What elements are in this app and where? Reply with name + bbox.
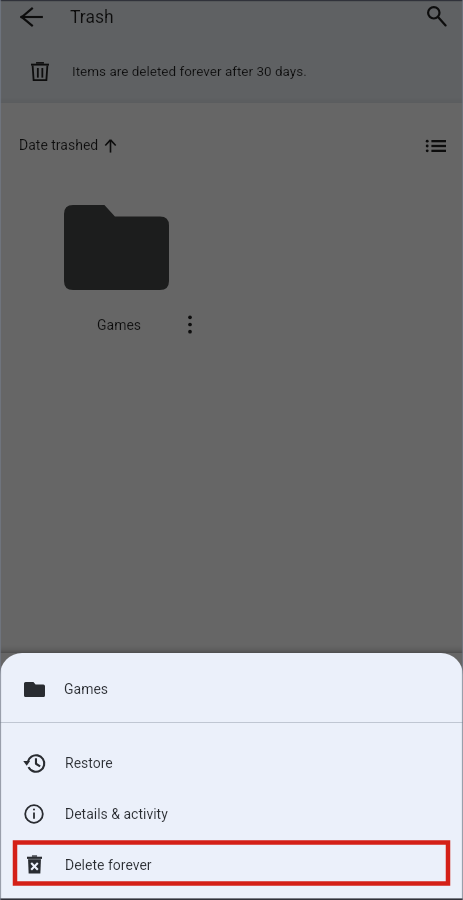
staticText: Games xyxy=(64,681,109,697)
button[interactable]: More options xyxy=(173,307,207,341)
button[interactable]: Date trashed xyxy=(11,132,125,158)
button[interactable]: Games xyxy=(0,667,463,711)
button[interactable] xyxy=(8,192,224,344)
button[interactable]: Details & activity xyxy=(0,789,463,839)
staticText: Restore xyxy=(65,755,113,771)
button[interactable]: Search xyxy=(419,0,455,33)
staticText: Items are deleted forever after 30 days. xyxy=(72,63,307,79)
staticText: Details & activity xyxy=(65,806,168,822)
staticText: Trash xyxy=(70,7,114,28)
button[interactable]: Restore xyxy=(0,738,463,788)
staticText: Date trashed xyxy=(19,137,99,153)
button[interactable]: Delete forever xyxy=(0,840,463,890)
button[interactable]: Back xyxy=(13,0,49,33)
button[interactable]: List view xyxy=(419,129,453,163)
staticText: Delete forever xyxy=(65,857,152,873)
staticText: Games xyxy=(97,317,142,333)
